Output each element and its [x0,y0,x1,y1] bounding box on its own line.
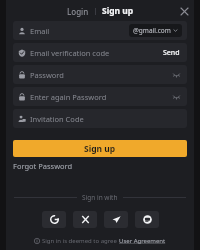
staticText: Email verification code [30,48,110,58]
button[interactable]: Sign in with Google [42,211,66,228]
button[interactable]: More sign in options [135,211,159,228]
button[interactable]: Sign in with X [73,211,97,228]
button[interactable]: Sign up [13,140,187,157]
button[interactable]: Password [13,65,187,84]
button[interactable]: Login [64,4,92,19]
button[interactable]: Email [13,21,187,40]
staticText: User Agreement [119,237,166,245]
staticText: Sign in with [82,193,118,202]
staticText: Email [30,26,50,36]
staticText: Enter again Password [30,92,107,102]
staticText: Sign up [84,143,116,155]
button[interactable]: Email verification code [13,43,187,62]
staticText: Send [163,48,180,58]
button[interactable]: Toggle password visibility [171,91,182,102]
staticText: Password [30,70,64,80]
button[interactable]: User Agreement [119,237,166,245]
button[interactable]: Sign in with Telegram [104,211,128,228]
button[interactable]: @gmail.com [129,24,182,37]
staticText: Forgot Password [13,161,73,171]
button[interactable]: Send [161,46,182,60]
button[interactable]: Invitation Code [13,109,187,128]
staticText: Invitation Code [30,114,84,124]
button[interactable]: Close [177,4,191,18]
staticText: @gmail.com [133,26,171,35]
staticText: Sign in is deemed to agree [42,237,119,245]
button[interactable]: Toggle password visibility [171,69,182,80]
staticText: Login [67,6,89,17]
button[interactable]: Sign up [99,3,137,19]
staticText: Sign up [102,5,134,17]
button[interactable]: Enter again Password [13,87,187,106]
button[interactable]: Forgot Password [13,161,73,171]
